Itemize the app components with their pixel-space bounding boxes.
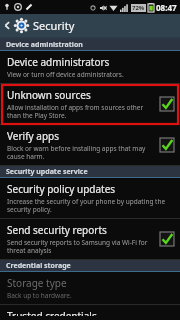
staticText: Send security reports to Samsung via Wi-…: [7, 238, 155, 255]
staticText: Unknown sources: [7, 88, 91, 102]
staticText: Security: [33, 18, 75, 33]
staticText: Back up to hardware.: [7, 291, 72, 300]
staticText: View or turn off device administrators.: [7, 70, 124, 79]
button[interactable]: Back: [0, 14, 14, 37]
button[interactable]: Toggle setting: [159, 137, 175, 153]
staticText: Send security reports: [7, 223, 107, 237]
staticText: Device administrators: [7, 55, 110, 69]
button[interactable]: Storage type: [0, 272, 180, 305]
staticText: Increase the security of your phone by u…: [7, 197, 175, 214]
staticText: Storage type: [7, 276, 67, 290]
staticText: 72%: [132, 4, 145, 12]
staticText: Credential storage: [6, 261, 71, 271]
button[interactable]: Security policy updates: [0, 178, 180, 219]
button[interactable]: Verify apps: [0, 125, 180, 166]
staticText: Security update service: [6, 167, 88, 177]
button[interactable]: Send security reports: [0, 219, 180, 260]
button[interactable]: Trusted credentials: [0, 305, 180, 320]
button[interactable]: Toggle setting: [159, 231, 175, 247]
staticText: Security policy updates: [7, 182, 116, 196]
staticText: 08:47: [156, 2, 177, 13]
staticText: Trusted credentials: [7, 309, 97, 316]
button[interactable]: Unknown sources: [0, 84, 180, 125]
staticText: Block or warn before installing apps tha…: [7, 144, 155, 161]
staticText: Verify apps: [7, 129, 59, 143]
staticText: Device administration: [6, 40, 83, 50]
button[interactable]: Toggle setting: [159, 96, 175, 112]
button[interactable]: Device administrators: [0, 51, 180, 84]
staticText: Allow installation of apps from sources …: [7, 103, 155, 120]
